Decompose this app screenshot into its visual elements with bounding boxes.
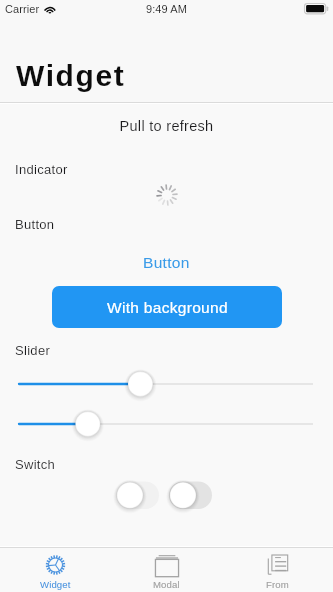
staticText: Widget <box>40 579 71 590</box>
staticText: Switch <box>15 457 56 472</box>
staticText: Button <box>15 217 55 232</box>
staticText: With background <box>107 299 228 316</box>
staticText: Widget <box>16 59 126 93</box>
button[interactable] <box>0 410 333 438</box>
staticText: Button <box>143 254 190 271</box>
staticText: Carrier <box>5 3 40 15</box>
button[interactable]: From <box>222 548 333 592</box>
button[interactable]: Toggle switch <box>116 481 162 511</box>
button[interactable]: Modal <box>111 548 222 592</box>
button[interactable]: Button <box>0 250 333 274</box>
staticText: From <box>266 579 289 590</box>
staticText: Modal <box>153 579 180 590</box>
button[interactable]: With background <box>52 286 282 328</box>
staticText: Indicator <box>15 162 68 177</box>
staticText: Pull to refresh <box>0 118 333 134</box>
button[interactable]: Widget <box>0 548 111 592</box>
staticText: Slider <box>15 343 51 358</box>
button[interactable]: Toggle switch <box>169 481 215 511</box>
staticText: 9:49 AM <box>0 3 333 15</box>
button[interactable] <box>0 370 333 398</box>
